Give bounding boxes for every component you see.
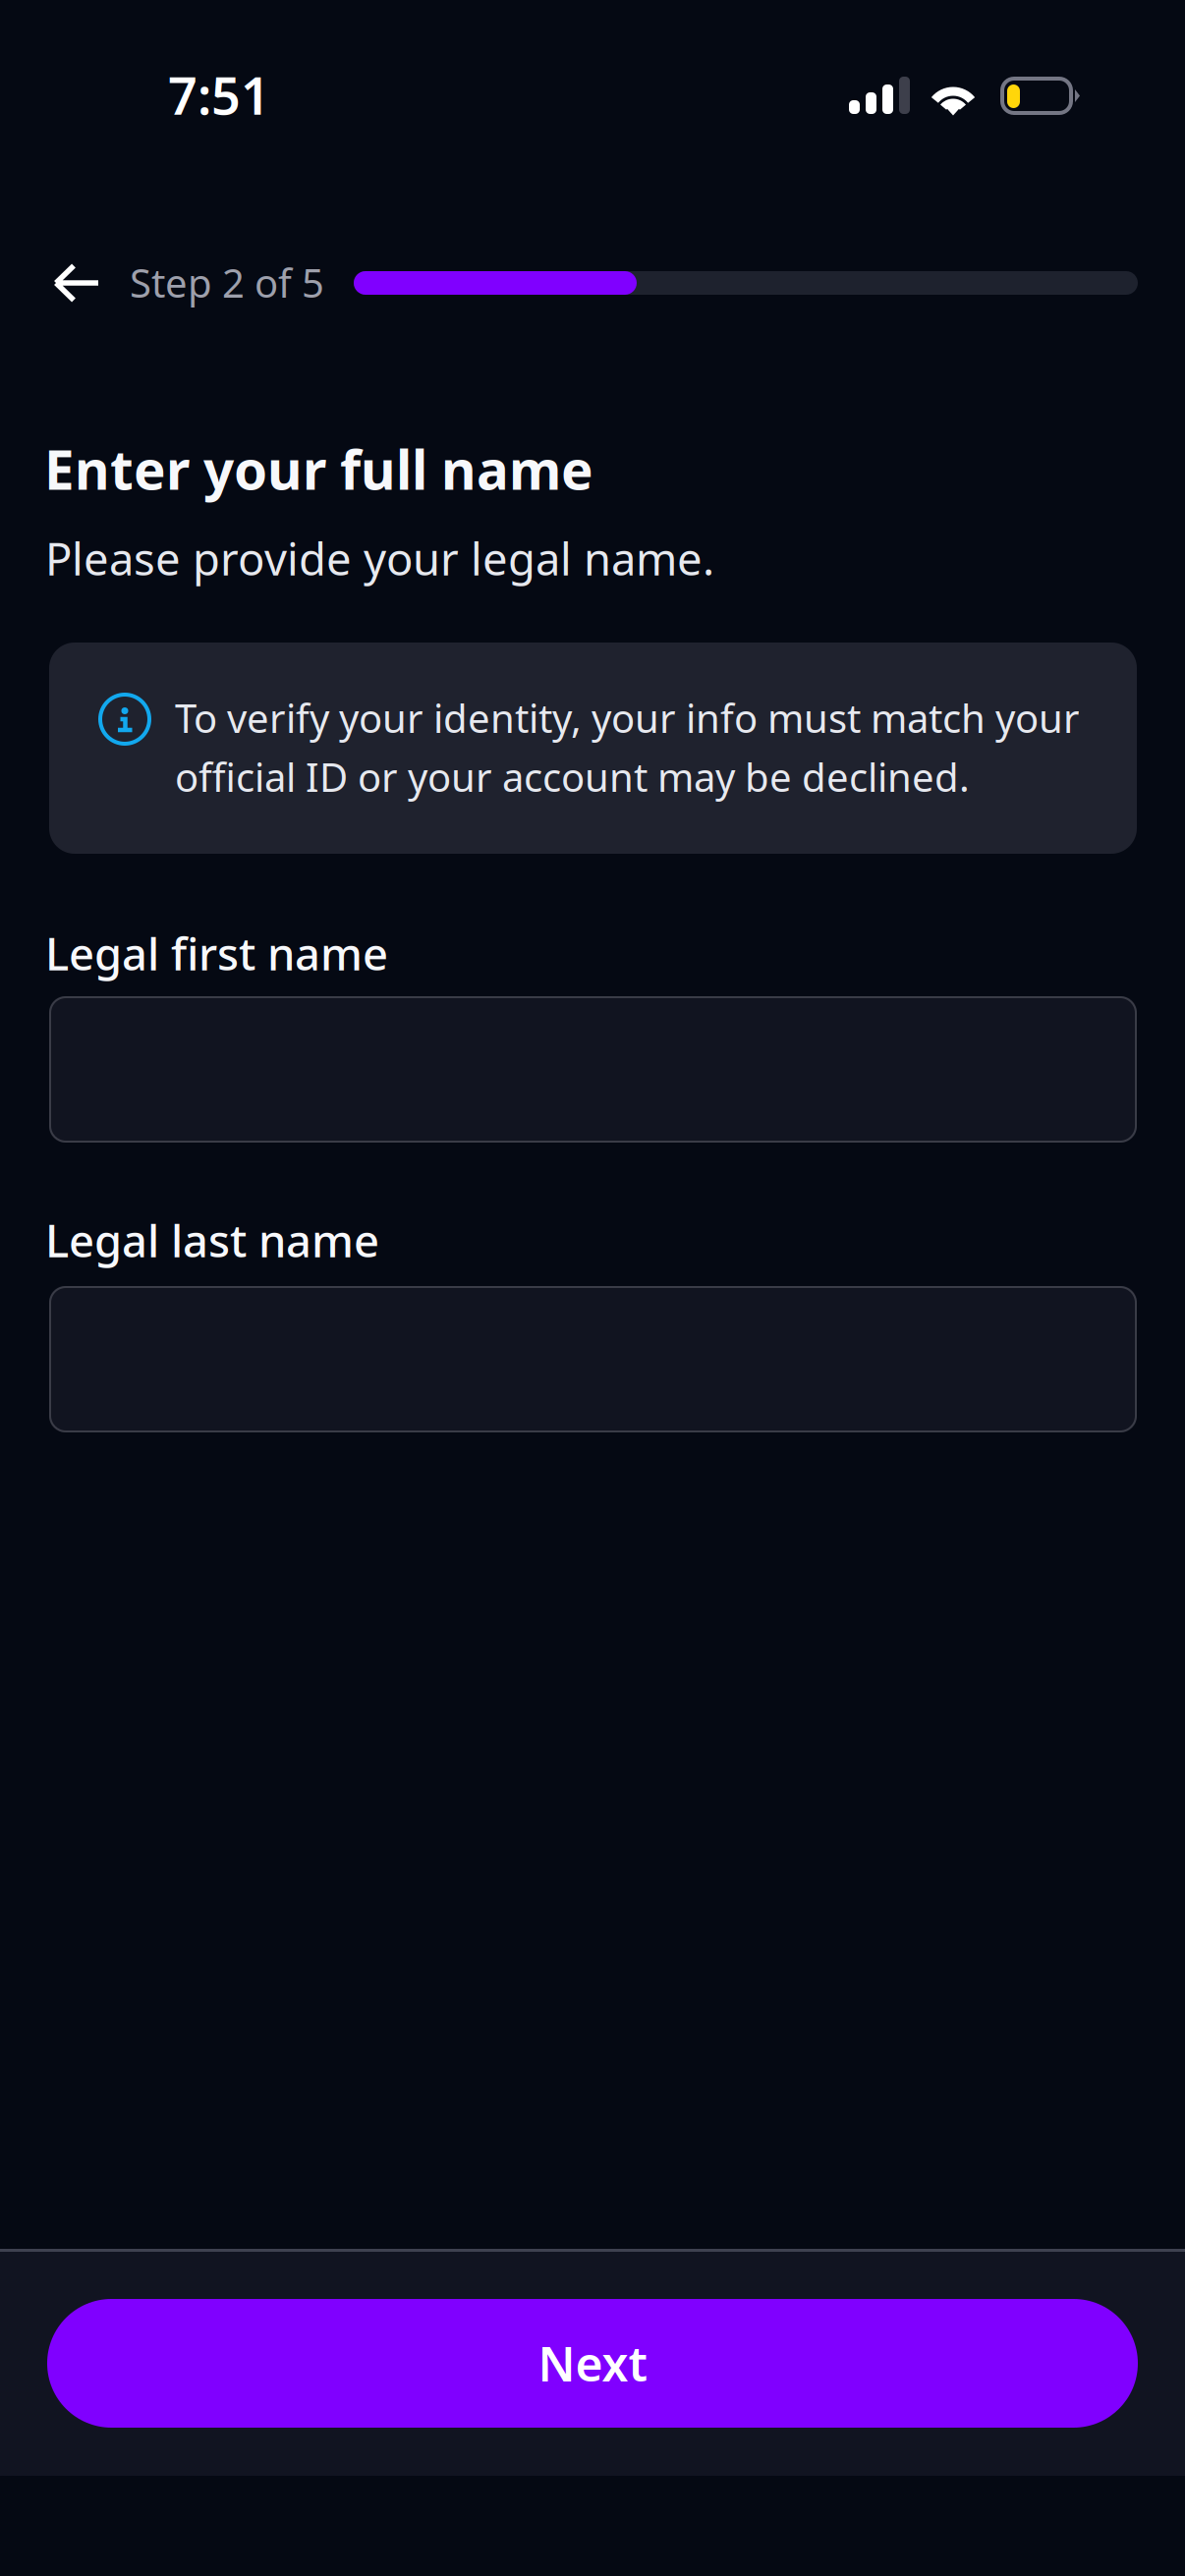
staticText: To verify your identity, your info must … <box>175 692 1080 744</box>
button[interactable]: Legal last name <box>49 1286 1137 1432</box>
staticText: Legal first name <box>45 924 388 983</box>
staticText: Next <box>538 2332 647 2395</box>
staticText: official ID or your account may be decli… <box>175 751 970 803</box>
staticText: 7:51 <box>168 61 270 129</box>
button[interactable]: Legal first name <box>49 996 1137 1143</box>
staticText: Legal last name <box>45 1210 379 1270</box>
staticText: Please provide your legal name. <box>45 529 714 588</box>
staticText: Step 2 of 5 <box>130 256 324 309</box>
button[interactable]: Next <box>47 2299 1138 2428</box>
button[interactable]: Back <box>49 254 106 311</box>
staticText: Enter your full name <box>44 433 593 505</box>
